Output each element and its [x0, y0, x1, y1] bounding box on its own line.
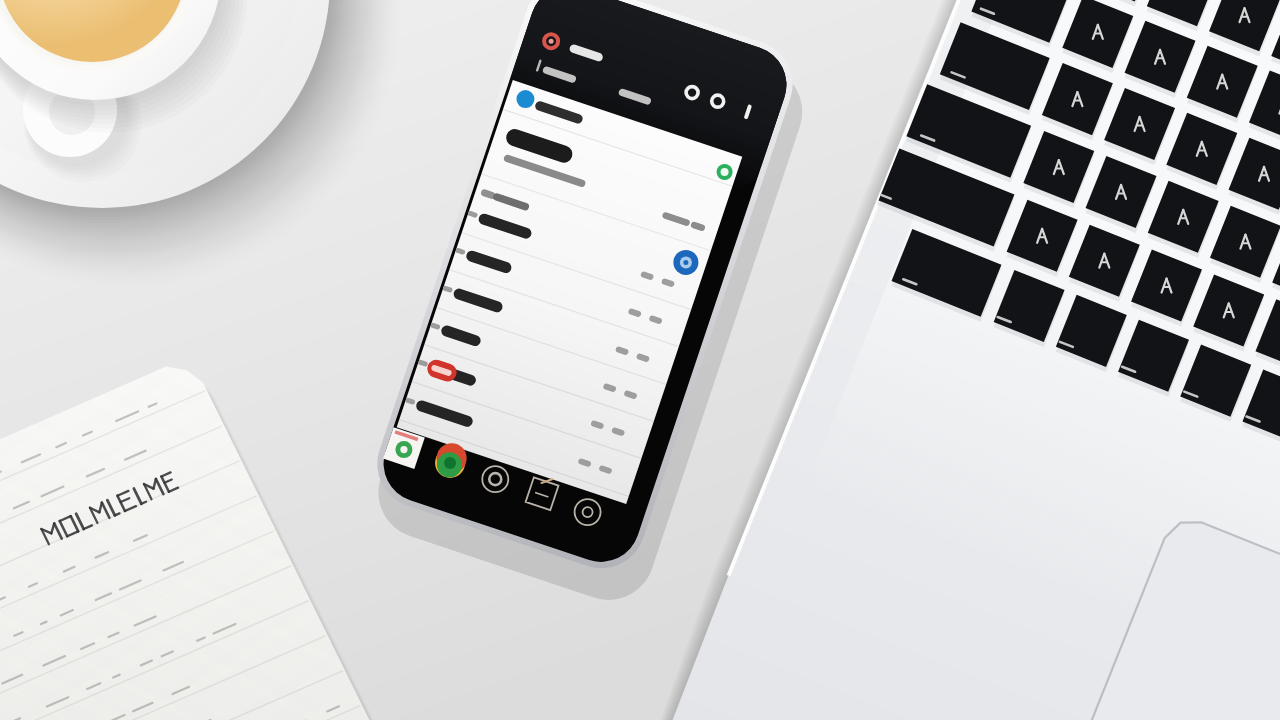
button[interactable]: Status icons	[671, 69, 780, 144]
button[interactable]: List item 1	[462, 197, 704, 310]
button[interactable]: Verified	[700, 152, 748, 195]
button[interactable]: Settings	[473, 457, 519, 503]
button[interactable]: List item 5	[412, 346, 654, 459]
button[interactable]: Gallery	[520, 472, 566, 518]
button[interactable]: List item 4	[424, 309, 666, 422]
button[interactable]: Notifications	[516, 18, 648, 109]
button[interactable]: List item 6	[399, 384, 641, 497]
button[interactable]: Recent section	[472, 178, 710, 279]
button[interactable]: List item 2	[449, 234, 691, 347]
button[interactable]: Notes	[382, 426, 428, 472]
button[interactable]: Messages app header	[503, 80, 743, 187]
button[interactable]: Conversation summary	[482, 114, 731, 250]
button[interactable]: Browser	[428, 441, 474, 487]
button[interactable]: Camera	[566, 488, 612, 534]
button[interactable]: List item 3	[437, 272, 679, 385]
